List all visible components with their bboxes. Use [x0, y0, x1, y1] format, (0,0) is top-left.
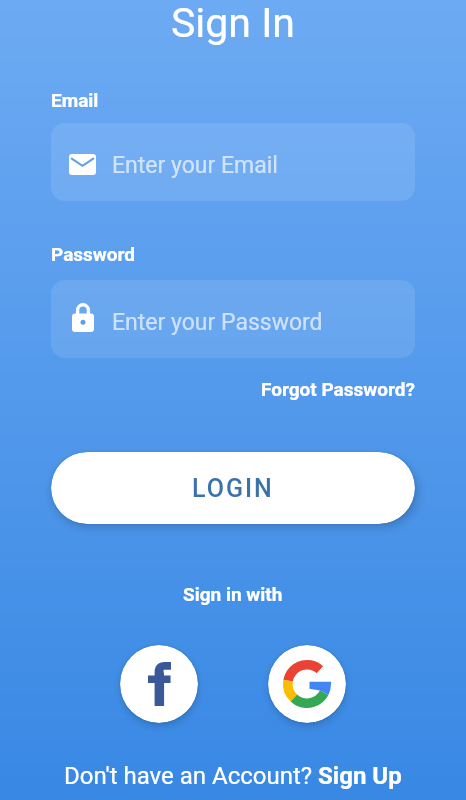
staticText: Enter your Email — [112, 152, 278, 179]
button[interactable]: Enter your Email — [51, 123, 415, 201]
button[interactable]: Sign in with Facebook — [120, 645, 198, 723]
staticText: Password — [51, 243, 135, 265]
button[interactable]: Sign in with Google — [268, 645, 346, 723]
staticText: Sign in with — [183, 583, 283, 605]
button[interactable]: Don't have an Account? Sign Up — [64, 762, 402, 790]
button[interactable]: LOGIN — [51, 452, 415, 524]
button[interactable]: Forgot Password? — [261, 378, 415, 400]
staticText: LOGIN — [192, 474, 274, 503]
staticText: Enter your Password — [112, 309, 323, 336]
button[interactable]: Enter your Password — [51, 280, 415, 358]
staticText: Email — [51, 89, 99, 111]
staticText: Don't have an Account? Sign Up — [64, 762, 402, 790]
staticText: Forgot Password? — [261, 378, 415, 400]
staticText: Sign In — [171, 0, 295, 47]
